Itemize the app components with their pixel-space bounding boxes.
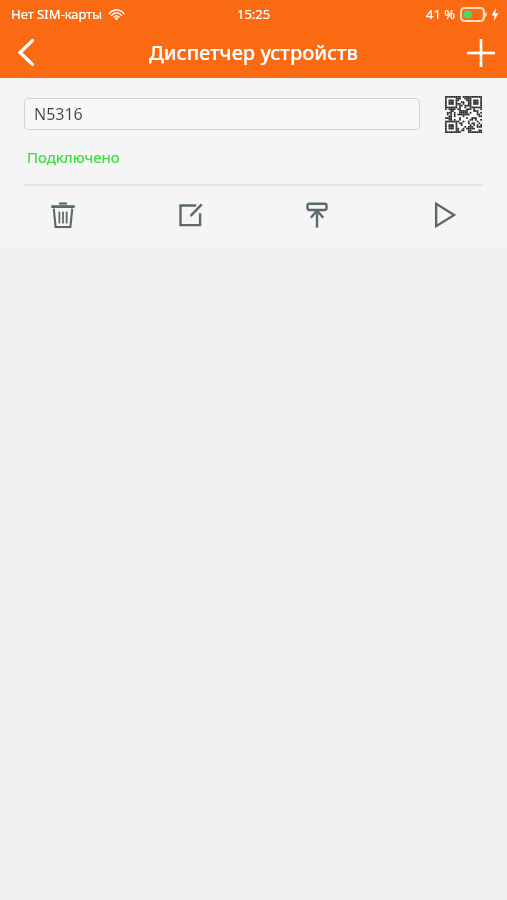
staticText: 15:25 <box>237 5 271 23</box>
button[interactable]: N5316 <box>24 98 420 130</box>
button[interactable]: Запустить <box>380 186 507 244</box>
staticText: Диспетчер устройств <box>149 39 359 66</box>
button[interactable]: Удалить <box>0 186 126 244</box>
button[interactable]: Назад <box>0 27 52 78</box>
button[interactable]: QR-код <box>444 95 482 133</box>
button[interactable]: Добавить <box>455 27 507 78</box>
button[interactable]: Изменить <box>126 186 253 244</box>
staticText: Нет SIM-карты <box>11 5 103 23</box>
staticText: Подключено <box>27 147 120 167</box>
button[interactable]: Обновить <box>253 186 380 244</box>
staticText: N5316 <box>34 103 83 125</box>
staticText: 41 % <box>426 5 456 23</box>
